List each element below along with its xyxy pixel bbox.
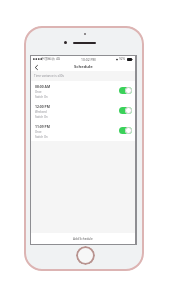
staticText: Time variance is ±30s [34,74,64,78]
button[interactable]: Toggle schedule [119,87,132,94]
button[interactable]: 08:00 AM [31,81,135,101]
staticText: Add Schedule [73,237,93,241]
staticText: 中国移动 [41,57,55,61]
staticText: Once [35,130,42,134]
button[interactable]: 12:00 PM [31,101,135,121]
staticText: Weekend [35,110,47,114]
button[interactable]: Home [76,246,95,265]
staticText: 92% [119,57,126,61]
button[interactable]: Toggle schedule [119,127,132,134]
staticText: 12:00 PM [35,104,50,109]
staticText: 4G [56,57,61,61]
button[interactable]: Toggle schedule [119,107,132,114]
staticText: Switch On [35,115,48,119]
staticText: Switch On [35,135,48,139]
staticText: 08:00 AM [35,84,51,89]
staticText: Schedule [74,64,93,70]
staticText: 10:02 PM [81,57,96,62]
staticText: Once [35,90,42,94]
button[interactable]: 11:09 PM [31,121,135,141]
button[interactable]: Add Schedule [31,233,135,244]
button[interactable]: Back [32,63,40,71]
staticText: 11:09 PM [35,124,50,129]
staticText: Switch On [35,95,48,99]
